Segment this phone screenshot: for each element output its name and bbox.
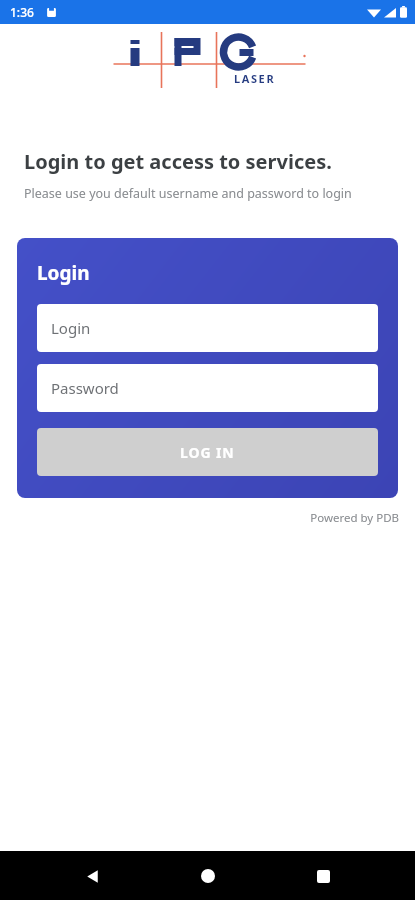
staticText: Login to get access to services.	[24, 148, 332, 175]
button[interactable]: Login	[37, 304, 378, 352]
button[interactable]: Home	[184, 852, 232, 900]
staticText: Please use you default username and pass…	[24, 185, 352, 202]
button[interactable]: LOG IN	[37, 428, 378, 476]
staticText: LASER	[234, 71, 276, 86]
staticText: Password	[51, 378, 119, 398]
button[interactable]: Recent apps	[299, 852, 347, 900]
button[interactable]: Password	[37, 364, 378, 412]
staticText: LOG IN	[180, 443, 235, 462]
staticText: Powered by PDB	[0, 510, 399, 526]
button[interactable]: Back	[68, 852, 116, 900]
staticText: Login	[37, 260, 90, 286]
staticText: Login	[51, 318, 91, 338]
staticText: 1:36	[10, 4, 34, 20]
